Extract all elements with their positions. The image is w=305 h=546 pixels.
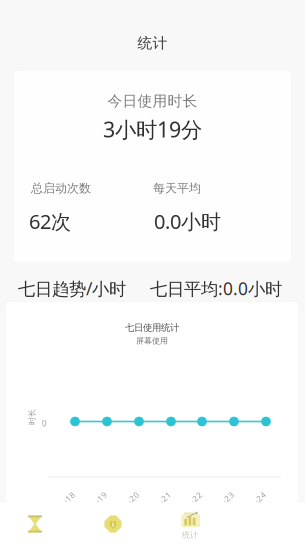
staticText: -19 [94, 492, 107, 503]
staticText: -22 [189, 492, 202, 503]
staticText: 屏幕使用 [136, 336, 168, 346]
staticText: 总启动次数 [31, 181, 91, 196]
staticText: 统计 [182, 530, 198, 540]
staticText: 3小时19分 [103, 115, 202, 143]
staticText: 统计 [137, 34, 167, 52]
staticText: 每天平均 [153, 181, 201, 196]
button[interactable]: 成就 [76, 502, 152, 546]
staticText: 七日平均:0.0小时 [150, 277, 282, 300]
staticText: -23 [221, 492, 234, 503]
button[interactable]: 统计 [152, 502, 228, 546]
staticText: 0 [42, 418, 47, 429]
button[interactable]: 计时 [0, 502, 76, 546]
staticText: 今日使用时长 [107, 92, 197, 110]
staticText: 七日使用统计 [125, 322, 179, 333]
staticText: 0.0小时 [154, 208, 221, 235]
staticText: 七日趋势/小时 [18, 277, 126, 300]
staticText: -21 [158, 492, 171, 503]
staticText: 时长 [24, 412, 40, 422]
staticText: -24 [253, 492, 266, 503]
staticText: -20 [126, 492, 139, 503]
staticText: -18 [62, 492, 75, 503]
staticText: 62次 [29, 208, 71, 235]
